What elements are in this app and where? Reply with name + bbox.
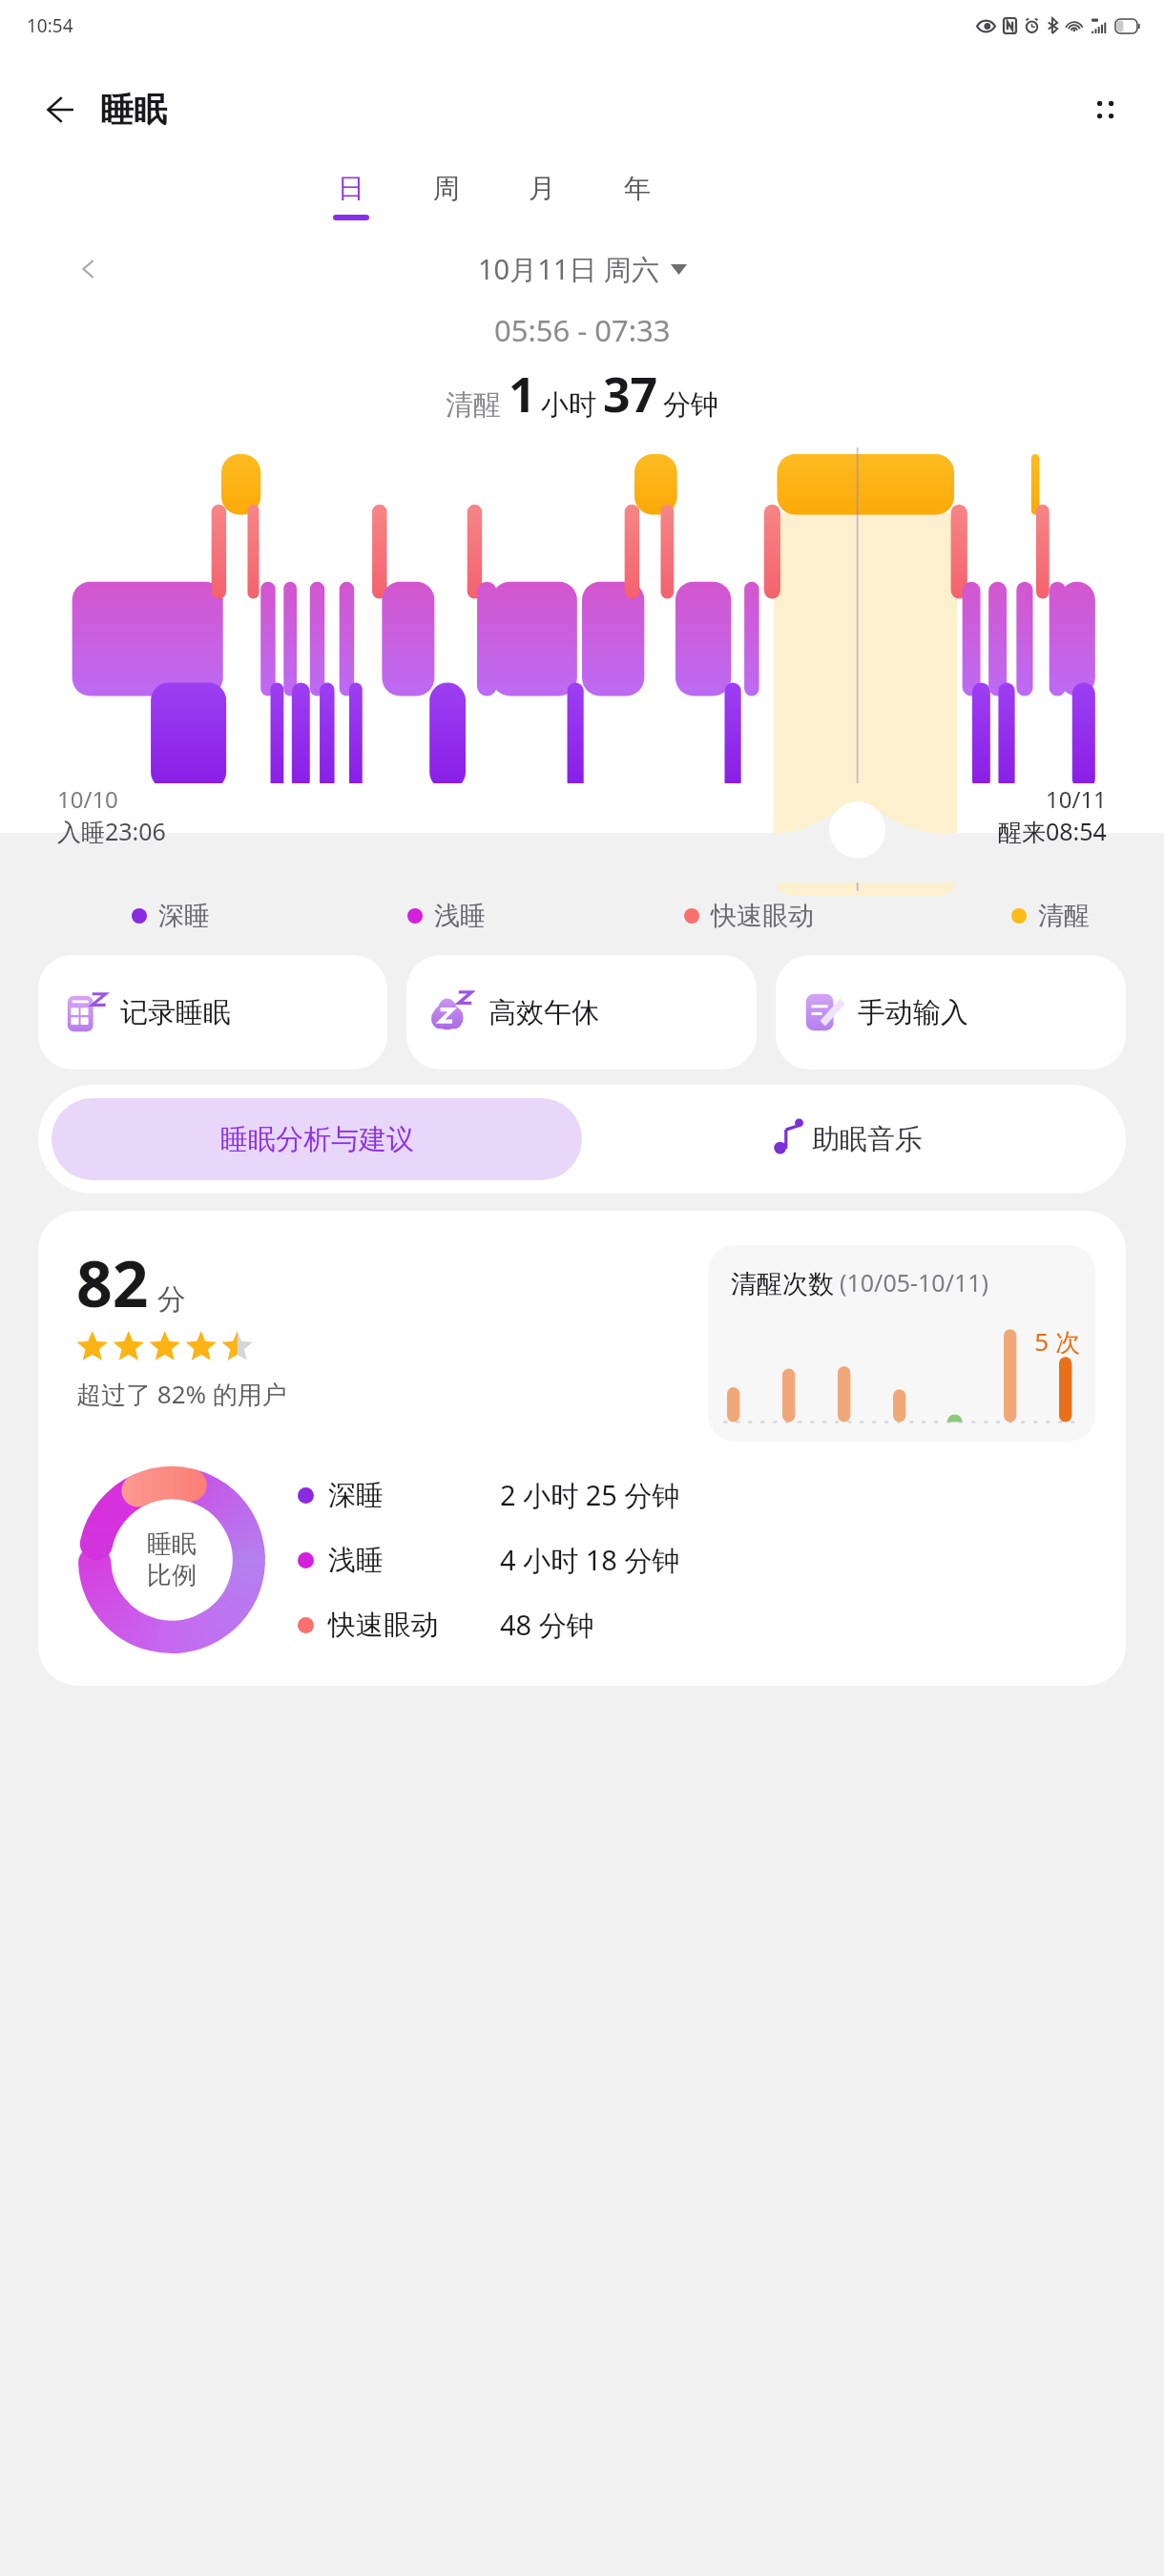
staticText: 高效午休 bbox=[488, 995, 599, 1030]
button[interactable]: More options bbox=[1074, 79, 1135, 140]
staticText: 1 bbox=[509, 362, 536, 426]
staticText: 分钟 bbox=[663, 387, 718, 423]
staticText: 深睡 bbox=[158, 900, 210, 932]
staticText: 10月11日 周六 bbox=[478, 250, 659, 288]
button[interactable]: 周 bbox=[399, 168, 494, 224]
button[interactable]: 月 bbox=[494, 168, 590, 224]
button[interactable]: 日 bbox=[303, 168, 399, 224]
staticText: 日 bbox=[338, 172, 364, 205]
staticText: 浅睡 bbox=[328, 1543, 500, 1578]
staticText: 睡眠分析与建议 bbox=[220, 1122, 414, 1157]
staticText: (10/05-10/11) bbox=[840, 1266, 989, 1298]
staticText: 快速眼动 bbox=[711, 900, 814, 932]
button[interactable]: 深睡 bbox=[298, 1476, 680, 1514]
staticText: 超过了 82% 的用户 bbox=[76, 1377, 287, 1411]
button[interactable]: 手动输入 bbox=[776, 955, 1126, 1070]
staticText: 记录睡眠 bbox=[120, 995, 231, 1030]
staticText: 清醒 bbox=[446, 387, 501, 423]
staticText: 4 小时 18 分钟 bbox=[500, 1541, 680, 1579]
staticText: 分 bbox=[157, 1281, 186, 1318]
staticText: 睡眠 bbox=[147, 1528, 197, 1560]
button[interactable]: 助眠音乐 bbox=[582, 1098, 1112, 1180]
staticText: 月 bbox=[529, 172, 555, 205]
staticText: 82 bbox=[76, 1239, 149, 1325]
staticText: 快速眼动 bbox=[328, 1608, 500, 1643]
staticText: 小时 bbox=[541, 387, 596, 423]
staticText: 睡眠 bbox=[100, 89, 167, 131]
button[interactable]: 清醒 bbox=[1011, 900, 1090, 932]
staticText: 年 bbox=[624, 172, 651, 205]
staticText: 清醒 bbox=[1038, 900, 1090, 932]
staticText: 清醒次数 bbox=[731, 1268, 834, 1300]
button[interactable]: 浅睡 bbox=[407, 900, 486, 932]
staticText: 05:56 - 07:33 bbox=[494, 310, 671, 350]
button[interactable]: 睡眠分析与建议 bbox=[52, 1098, 582, 1180]
button[interactable]: 快速眼动 bbox=[298, 1606, 594, 1644]
button[interactable]: 10月11日 周六 bbox=[470, 246, 695, 292]
staticText: 10/11 bbox=[1046, 783, 1107, 815]
staticText: 48 分钟 bbox=[500, 1606, 594, 1644]
staticText: 深睡 bbox=[328, 1478, 500, 1513]
staticText: 10:54 bbox=[27, 13, 73, 38]
staticText: 10/10 bbox=[57, 783, 118, 815]
staticText: 助眠音乐 bbox=[812, 1122, 923, 1157]
button[interactable]: 年 bbox=[590, 168, 685, 224]
button[interactable]: 深睡 bbox=[132, 900, 210, 932]
staticText: 浅睡 bbox=[434, 900, 486, 932]
staticText: 醒来08:54 bbox=[998, 815, 1107, 847]
button[interactable]: 浅睡 bbox=[298, 1541, 680, 1579]
staticText: 2 小时 25 分钟 bbox=[500, 1476, 680, 1514]
button[interactable]: Previous day bbox=[63, 243, 114, 295]
button[interactable]: 记录睡眠 bbox=[38, 955, 387, 1070]
staticText: 37 bbox=[603, 362, 658, 426]
staticText: 手动输入 bbox=[858, 995, 968, 1030]
button[interactable]: 快速眼动 bbox=[684, 900, 814, 932]
button[interactable]: 清醒次数 bbox=[708, 1245, 1095, 1442]
staticText: 周 bbox=[433, 172, 460, 205]
staticText: 入睡23:06 bbox=[57, 815, 166, 847]
staticText: 比例 bbox=[147, 1560, 197, 1591]
button[interactable]: 高效午休 bbox=[406, 955, 757, 1070]
staticText: 5 次 bbox=[1034, 1324, 1080, 1359]
button[interactable]: Back bbox=[31, 81, 88, 138]
